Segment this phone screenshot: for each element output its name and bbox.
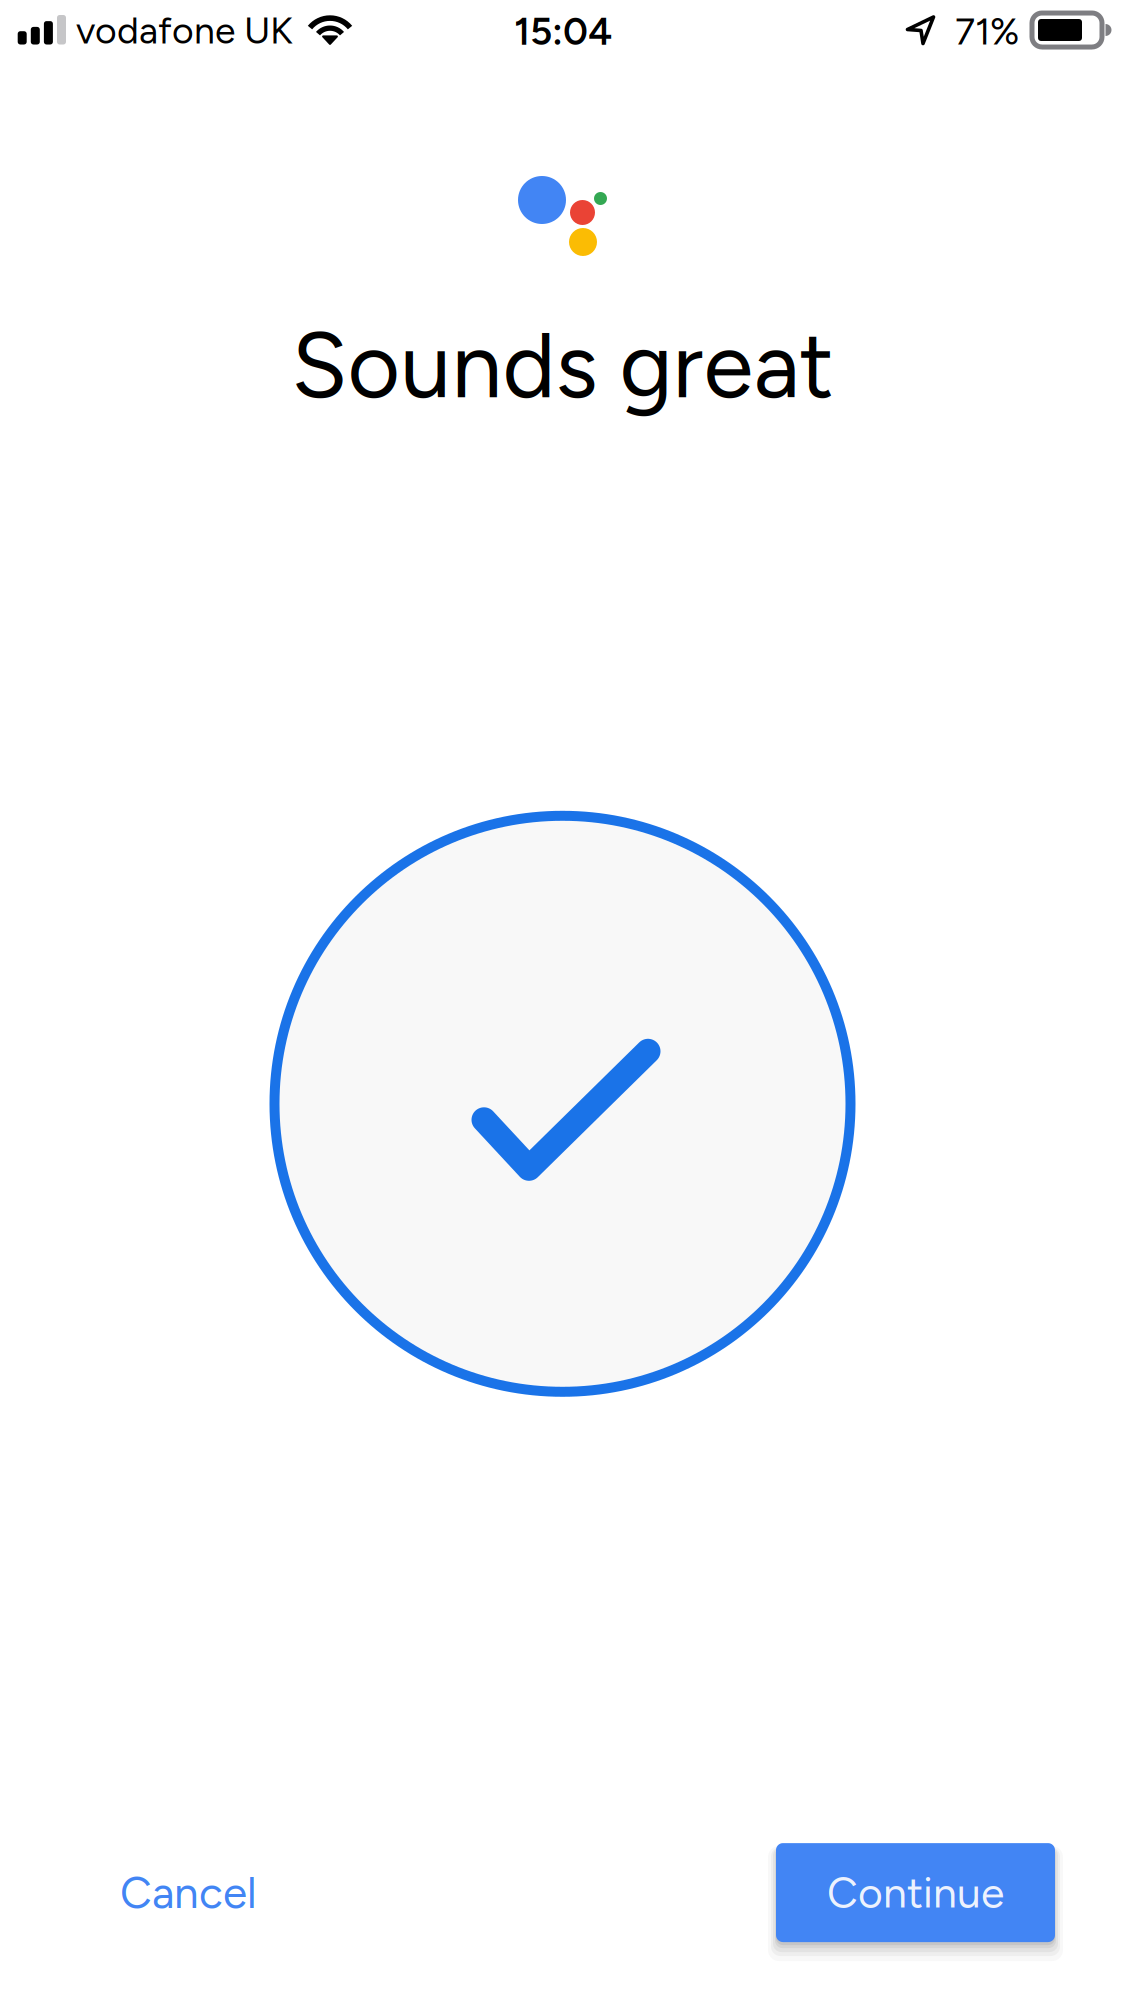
- staticText: Sounds great: [291, 311, 833, 420]
- staticText: 15:04: [514, 8, 612, 54]
- staticText: Continue: [827, 1867, 1004, 1918]
- button[interactable]: Continue: [776, 1843, 1055, 1942]
- staticText: vodafone UK: [76, 8, 293, 53]
- button[interactable]: Cancel: [90, 1842, 287, 1943]
- staticText: Cancel: [120, 1866, 257, 1919]
- staticText: 71%: [955, 9, 1019, 54]
